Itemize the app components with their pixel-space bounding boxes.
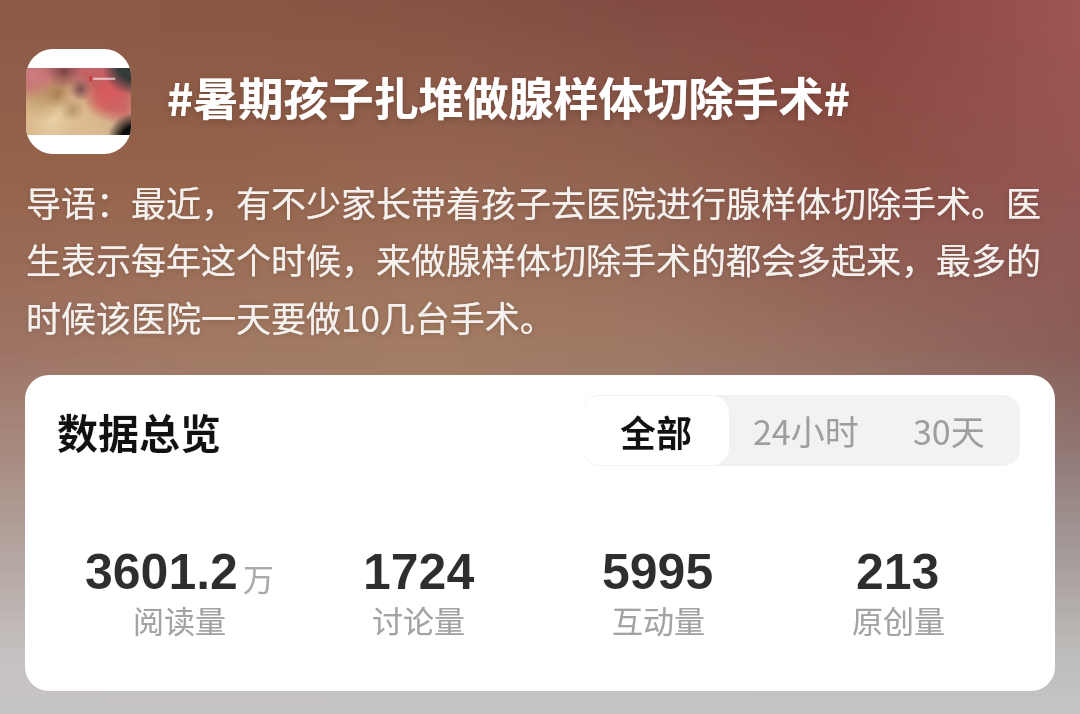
staticText: 30天 [913,406,985,455]
button[interactable]: 3601.2 [60,532,299,633]
staticText: 万 [243,555,274,600]
button[interactable]: #暑期孩子扎堆做腺样体切除手术# [167,64,851,129]
staticText: 导语：最近，有不少家长带着孩子去医院进行腺样体切除手术。医生表示每年这个时候，来… [26,176,1068,343]
staticText: 全部 [620,405,693,457]
staticText: 3601.2 [85,544,238,600]
staticText: 原创量 [852,597,945,642]
staticText: 讨论量 [372,597,465,642]
button[interactable]: 1724 [299,532,538,633]
button[interactable]: Topic cover photo [26,49,131,154]
staticText: 24小时 [753,406,859,455]
button[interactable]: 30天 [882,395,1015,466]
staticText: 数据总览 [57,401,221,460]
button[interactable]: 213 [778,532,1018,633]
staticText: 阅读量 [133,597,226,642]
staticText: 1724 [363,544,475,600]
button[interactable]: 24小时 [729,395,882,466]
staticText: 213 [856,544,940,600]
staticText: 互动量 [612,597,705,642]
staticText: 5995 [602,544,714,600]
button[interactable]: 全部 [583,396,729,465]
button[interactable]: 5995 [538,532,778,633]
